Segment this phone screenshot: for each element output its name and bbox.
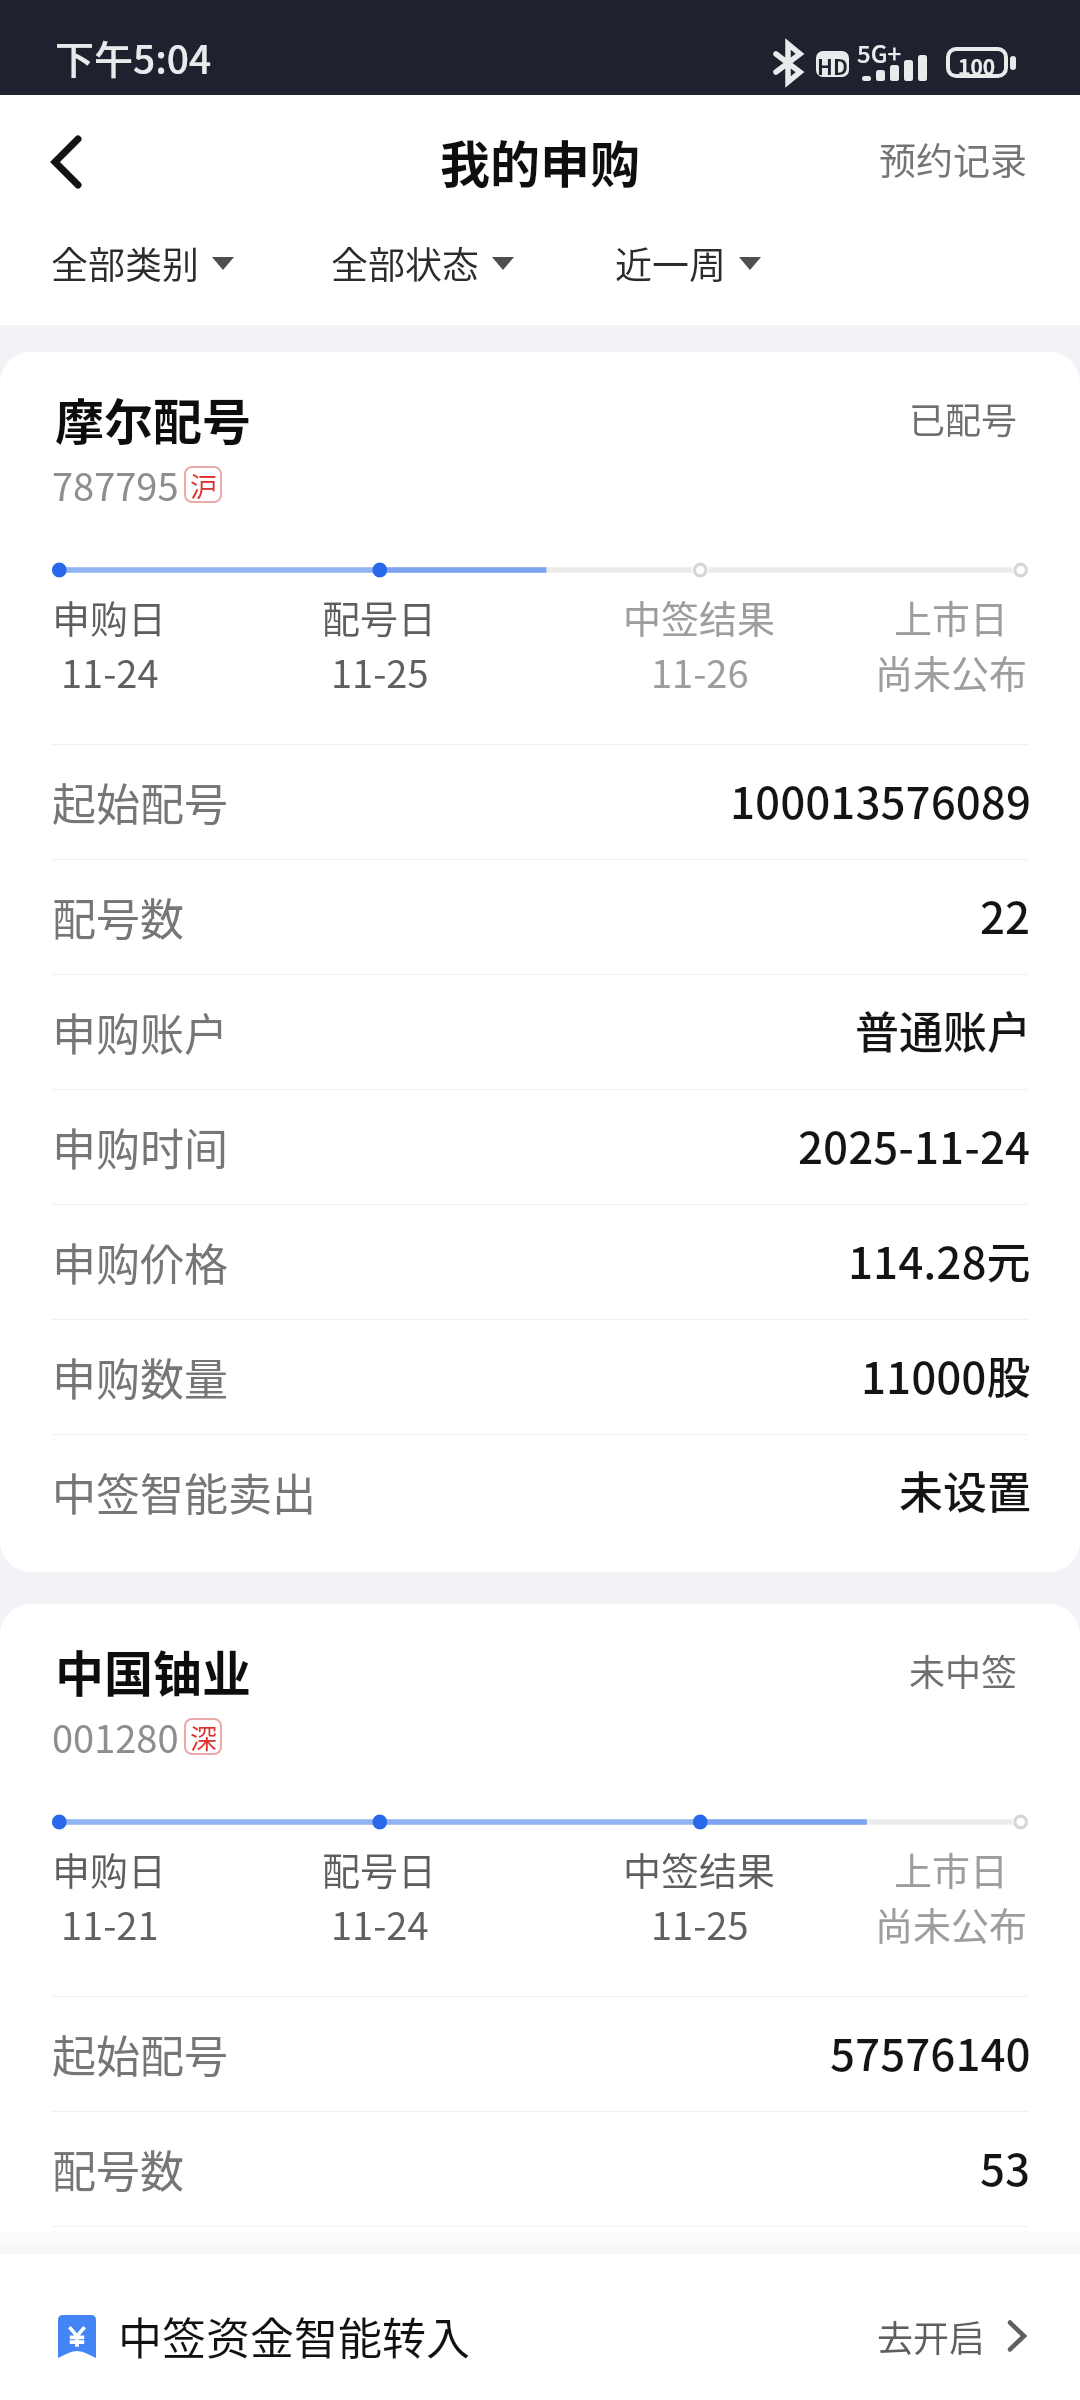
staticText: 深 bbox=[190, 1718, 217, 1755]
staticText: 5G+ bbox=[857, 35, 902, 70]
staticText: 起始配号 bbox=[52, 770, 228, 834]
staticText: 中签结果 bbox=[623, 1841, 776, 1896]
staticText: 中国铀业 bbox=[55, 1635, 252, 1706]
staticText: 787795 bbox=[52, 457, 179, 512]
staticText: 11-25 bbox=[331, 644, 429, 699]
staticText: 上市日 bbox=[894, 1841, 1009, 1896]
staticText: 中签结果 bbox=[623, 589, 776, 644]
staticText: 申购价格 bbox=[52, 1230, 228, 1294]
staticText: 100013576089 bbox=[730, 768, 1031, 832]
staticText: 摩尔配号 bbox=[55, 383, 252, 454]
staticText: 近一周 bbox=[615, 236, 726, 290]
staticText: 11000股 bbox=[861, 1343, 1031, 1407]
staticText: 22 bbox=[980, 883, 1031, 947]
button[interactable]: 全部状态 bbox=[331, 218, 514, 308]
staticText: 中签资金智能转入 bbox=[118, 2304, 470, 2368]
staticText: 100 bbox=[958, 51, 996, 74]
staticText: 11-24 bbox=[331, 1896, 429, 1951]
staticText: 配号数 bbox=[52, 885, 184, 949]
staticText: 申购账户 bbox=[52, 2252, 228, 2316]
button[interactable]: 全部类别 bbox=[51, 218, 234, 308]
staticText: 预约记录 bbox=[879, 132, 1027, 186]
staticText: 57576140 bbox=[830, 2020, 1031, 2084]
button[interactable]: 摩尔配号 bbox=[0, 352, 1080, 1572]
staticText: 起始配号 bbox=[52, 2022, 228, 2086]
staticText: 我的申购 bbox=[440, 125, 640, 197]
staticText: 未设置 bbox=[899, 1458, 1031, 1522]
button[interactable]: 中国铀业 bbox=[0, 1604, 1080, 2364]
staticText: 申购账户 bbox=[52, 1000, 228, 1064]
staticText: 尚未公布 bbox=[875, 644, 1028, 699]
staticText: 全部类别 bbox=[51, 236, 199, 290]
staticText: 普通账户 bbox=[855, 998, 1031, 1062]
staticText: 11-21 bbox=[61, 1896, 159, 1951]
staticText: 已配号 bbox=[909, 392, 1018, 444]
staticText: 上市日 bbox=[894, 589, 1009, 644]
button[interactable]: 近一周 bbox=[615, 218, 761, 308]
staticText: 中签智能卖出 bbox=[52, 1460, 316, 1524]
staticText: 2025-11-24 bbox=[798, 1113, 1031, 1177]
button[interactable]: 中签资金智能转入 bbox=[0, 2254, 1080, 2400]
staticText: 申购数量 bbox=[52, 1345, 228, 1409]
button[interactable]: 预约记录 bbox=[839, 112, 1080, 210]
staticText: 下午5:04 bbox=[55, 29, 212, 85]
staticText: 114.28元 bbox=[848, 1228, 1031, 1292]
staticText: HD bbox=[817, 51, 848, 77]
staticText: 尚未公布 bbox=[875, 1896, 1028, 1951]
staticText: 申购日 bbox=[52, 589, 167, 644]
staticText: 去开启 bbox=[877, 2310, 986, 2362]
staticText: 未中签 bbox=[909, 1644, 1018, 1696]
staticText: 申购日 bbox=[52, 1841, 167, 1896]
staticText: 沪 bbox=[190, 466, 217, 503]
staticText: 全部状态 bbox=[331, 236, 479, 290]
staticText: 001280 bbox=[52, 1709, 179, 1764]
button[interactable]: Back bbox=[0, 99, 124, 223]
staticText: 配号日 bbox=[322, 1841, 437, 1896]
staticText: 11-25 bbox=[651, 1896, 749, 1951]
staticText: 配号数 bbox=[52, 2137, 184, 2201]
staticText: 11-24 bbox=[61, 644, 159, 699]
staticText: 11-26 bbox=[651, 644, 749, 699]
staticText: 申购时间 bbox=[52, 1115, 228, 1179]
staticText: 配号日 bbox=[322, 589, 437, 644]
staticText: 53 bbox=[980, 2135, 1031, 2199]
